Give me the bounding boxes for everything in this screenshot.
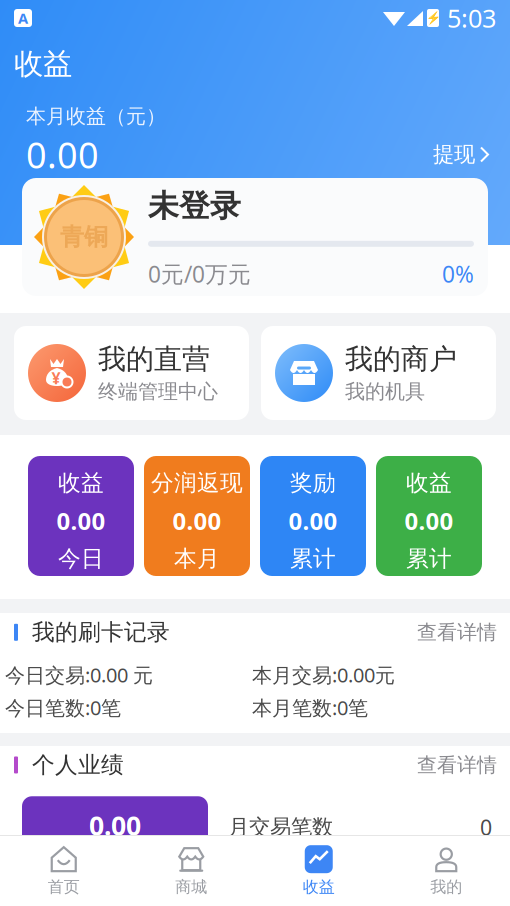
staticText: 我的商户: [345, 342, 457, 376]
staticText: 0.00: [89, 807, 141, 843]
button[interactable]: 收益: [376, 456, 482, 576]
staticText: 个人业绩: [32, 751, 124, 779]
staticText: ¥: [51, 367, 60, 389]
button[interactable]: 查看详情: [417, 750, 497, 780]
staticText: 今日笔数:0笔: [5, 694, 121, 721]
button[interactable]: 收益: [28, 456, 134, 576]
staticText: 0.00: [404, 505, 453, 537]
staticText: 收益: [58, 469, 104, 497]
staticText: 商城: [175, 877, 207, 897]
button[interactable]: 我的商户: [261, 326, 496, 420]
staticText: 累计: [290, 545, 336, 572]
button[interactable]: 商城: [127, 839, 255, 903]
staticText: 本月: [174, 545, 220, 572]
staticText: 收益: [406, 469, 452, 497]
staticText: 累计: [406, 545, 452, 572]
staticText: 5:03: [447, 1, 496, 35]
button[interactable]: ¥: [14, 326, 249, 420]
staticText: 0元/0万元: [148, 259, 251, 289]
staticText: ⚡: [425, 11, 440, 25]
button[interactable]: 奖励: [260, 456, 366, 576]
staticText: 0.00: [172, 505, 221, 537]
button[interactable]: 收益: [255, 839, 382, 903]
staticText: 奖励: [290, 469, 336, 497]
staticText: 我的: [430, 877, 462, 897]
staticText: 0.00: [288, 505, 337, 537]
button[interactable]: 提现: [433, 141, 510, 168]
button[interactable]: 我的: [382, 839, 510, 903]
staticText: 查看详情: [417, 753, 497, 777]
staticText: 我的机具: [345, 379, 425, 404]
staticText: 收益: [14, 46, 72, 82]
button[interactable]: 分润返现: [144, 456, 250, 576]
staticText: 首页: [48, 877, 80, 897]
staticText: 月交易笔数: [228, 814, 333, 840]
staticText: 0: [480, 813, 492, 841]
button[interactable]: 查看详情: [417, 617, 497, 648]
staticText: 0.00: [56, 505, 105, 537]
staticText: 0%: [442, 259, 474, 289]
staticText: 未登录: [148, 187, 241, 225]
staticText: 终端管理中心: [98, 379, 218, 404]
staticText: 提现: [433, 141, 475, 168]
staticText: 我的刷卡记录: [32, 618, 170, 646]
staticText: 我的直营: [98, 342, 210, 376]
staticText: 青铜: [60, 222, 108, 252]
staticText: 分润返现: [151, 469, 243, 497]
staticText: A: [18, 8, 28, 28]
staticText: 本月收益（元）: [26, 104, 166, 129]
staticText: 本月交易:0.00元: [252, 662, 395, 688]
staticText: 收益: [303, 877, 335, 897]
button[interactable]: 首页: [0, 839, 127, 903]
staticText: 0.00: [26, 131, 99, 178]
staticText: 查看详情: [417, 620, 497, 645]
staticText: 今日交易:0.00 元: [5, 662, 153, 688]
staticText: 今日: [58, 545, 104, 572]
staticText: 本月笔数:0笔: [252, 694, 368, 721]
